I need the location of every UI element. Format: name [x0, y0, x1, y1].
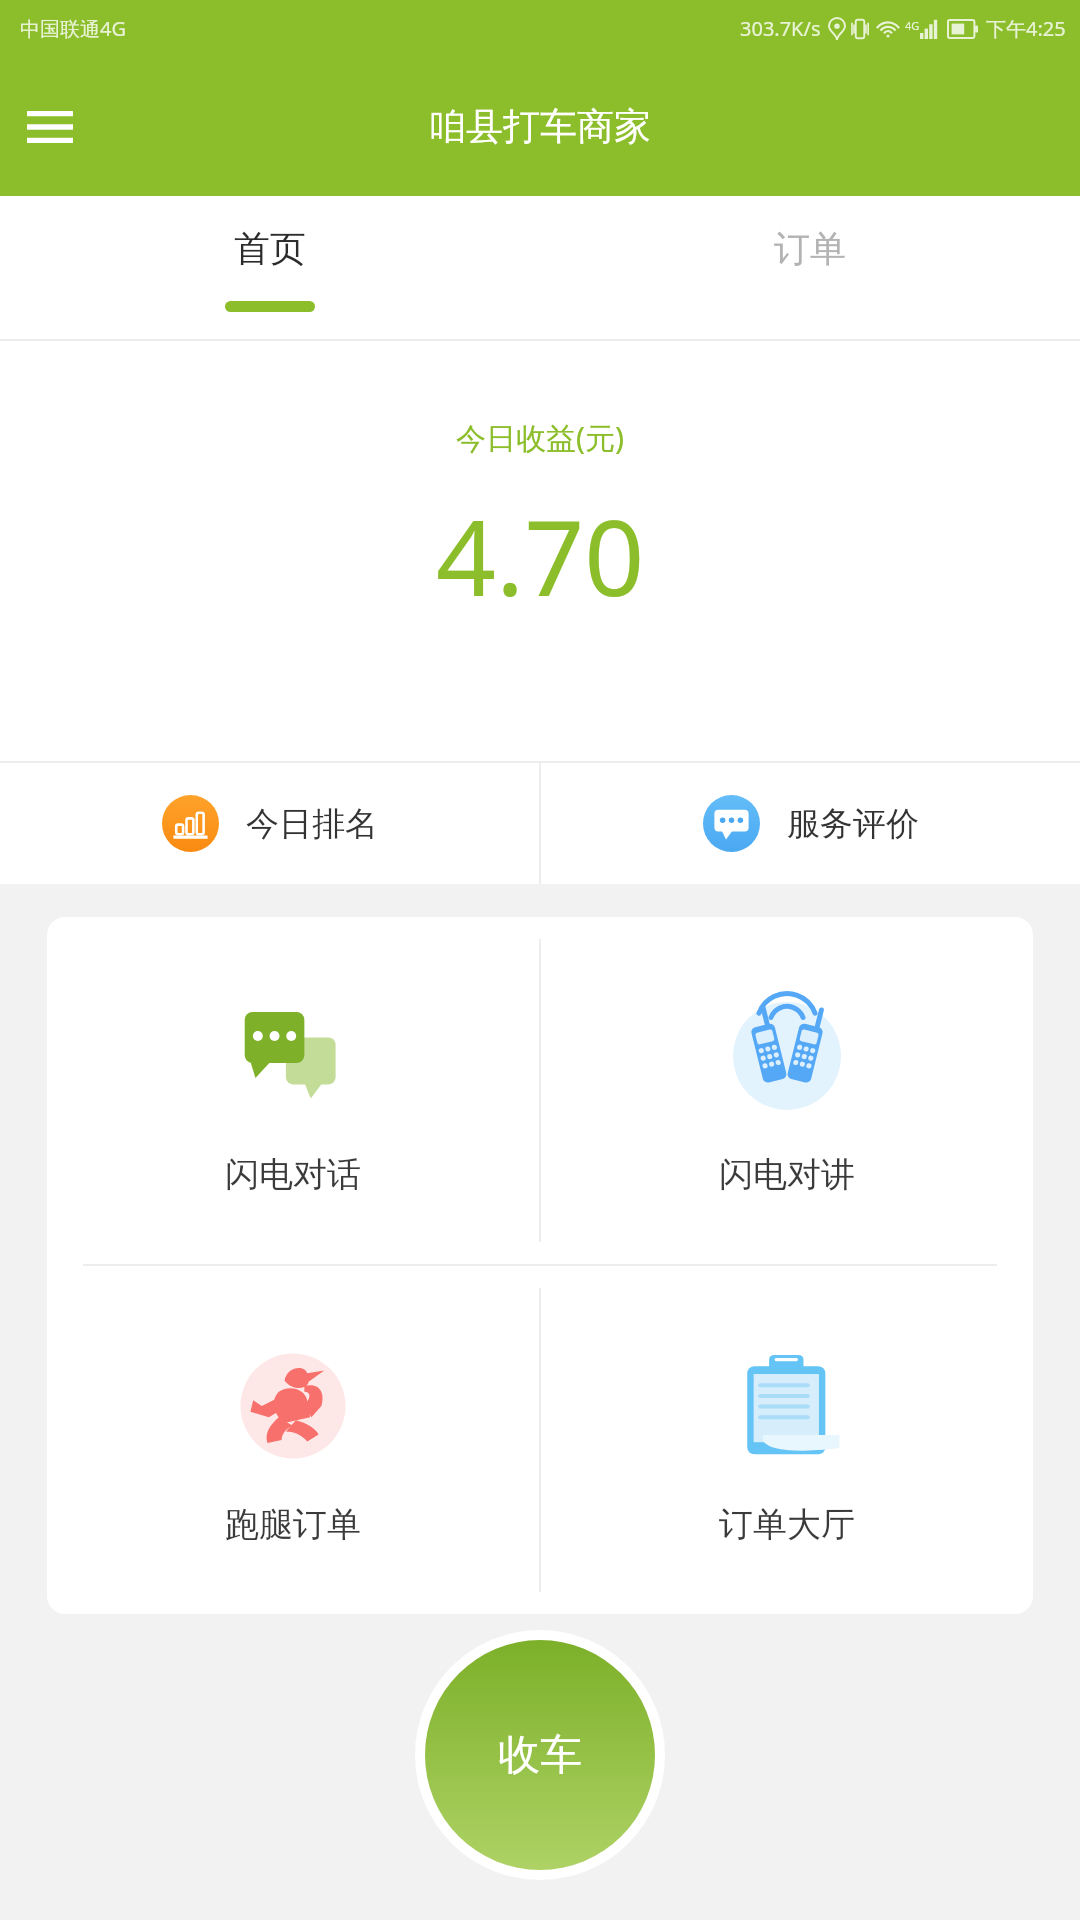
- staticText: 首页: [234, 226, 306, 271]
- staticText: 4.70: [436, 484, 645, 627]
- button[interactable]: 首页: [0, 196, 540, 341]
- button[interactable]: 收车: [425, 1640, 655, 1870]
- staticText: 303.7K/s: [740, 15, 821, 42]
- staticText: 今日收益(元): [456, 417, 624, 458]
- staticText: 订单: [774, 226, 846, 271]
- staticText: 订单大厅: [719, 1503, 855, 1546]
- staticText: 咱县打车商家: [429, 103, 651, 150]
- staticText: 收车: [498, 1729, 582, 1782]
- button[interactable]: 闪电对讲: [541, 917, 1033, 1264]
- staticText: 中国联通4G: [20, 15, 126, 42]
- staticText: 今日排名: [246, 803, 378, 845]
- staticText: 闪电对话: [225, 1153, 361, 1196]
- button[interactable]: 今日排名: [0, 763, 539, 884]
- button[interactable]: 跑腿订单: [47, 1266, 539, 1614]
- staticText: 服务评价: [787, 803, 919, 845]
- button[interactable]: 订单: [540, 196, 1080, 341]
- button[interactable]: 服务评价: [541, 763, 1080, 884]
- staticText: 4G: [905, 18, 920, 33]
- button[interactable]: 闪电对话: [47, 917, 539, 1264]
- button[interactable]: Menu: [14, 91, 86, 163]
- staticText: 跑腿订单: [225, 1503, 361, 1546]
- button[interactable]: 订单大厅: [541, 1266, 1033, 1614]
- staticText: 下午4:25: [986, 15, 1066, 42]
- staticText: 闪电对讲: [719, 1153, 855, 1196]
